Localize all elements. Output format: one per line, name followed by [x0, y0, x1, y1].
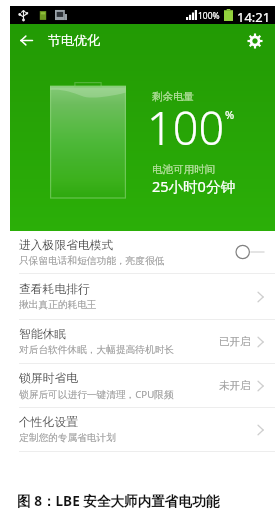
button[interactable]: 智能休眠 [10, 320, 275, 364]
staticText: 对后台软件休眠，大幅提高待机时长 [19, 344, 174, 356]
button[interactable]: Back [10, 24, 42, 56]
staticText: 只保留电话和短信功能，亮度很低 [19, 255, 165, 267]
staticText: 剩余电量 [152, 90, 194, 103]
staticText: 进入极限省电模式 [19, 238, 114, 253]
button[interactable]: 锁屏时省电 [10, 364, 275, 408]
staticText: 已开启 [219, 335, 251, 348]
staticText: 100 [147, 97, 225, 158]
staticText: 锁屏后可以进行一键清理，CPU限频 [19, 388, 174, 401]
staticText: 定制您的专属省电计划 [19, 432, 116, 444]
staticText: 电池可用时间 [152, 163, 215, 176]
staticText: 图 8：LBE 安全大师内置省电功能 [17, 491, 220, 510]
staticText: 锁屏时省电 [19, 371, 78, 386]
button[interactable]: 查看耗电排行 [10, 274, 275, 320]
staticText: 智能休眠 [19, 327, 67, 342]
button[interactable]: 个性化设置 [10, 408, 275, 452]
staticText: 查看耗电排行 [19, 282, 90, 297]
staticText: % [225, 107, 235, 122]
staticText: 25小时0分钟 [152, 176, 235, 196]
staticText: 节电优化 [48, 32, 100, 48]
staticText: 个性化设置 [19, 415, 78, 430]
staticText: 14:21 [237, 8, 271, 26]
staticText: 未开启 [219, 379, 251, 392]
button[interactable]: 进入极限省电模式 [10, 231, 275, 274]
staticText: 揪出真正的耗电王 [19, 299, 97, 311]
button[interactable]: Settings [239, 25, 271, 57]
staticText: 100% [198, 10, 220, 22]
